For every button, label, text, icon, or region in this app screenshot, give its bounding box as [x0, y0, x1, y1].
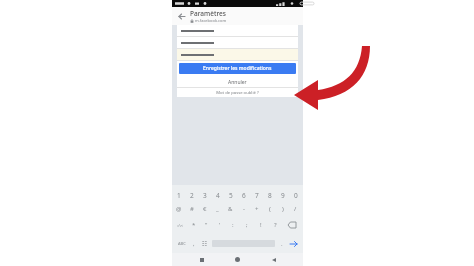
button[interactable]: 2 [185, 188, 198, 202]
button[interactable]: Backspace [282, 216, 301, 234]
button[interactable]: Back [176, 11, 187, 22]
staticText: 9 [281, 191, 285, 200]
staticText: 8 [268, 191, 272, 200]
staticText: Mot de passe oublié ? [216, 90, 259, 96]
staticText: € [203, 205, 207, 213]
button[interactable]: # [185, 202, 198, 216]
staticText: ABC [178, 241, 186, 246]
button[interactable]: 8 [263, 188, 276, 202]
button[interactable]: 4 [211, 188, 224, 202]
button[interactable]: @ [173, 202, 185, 216]
button[interactable]: ' [213, 216, 226, 234]
staticText: . [281, 240, 283, 248]
staticText: Paramètres [190, 9, 226, 18]
staticText: =\< [177, 223, 184, 228]
staticText: + [255, 205, 259, 213]
button[interactable] [177, 37, 298, 49]
button[interactable]: ? [268, 216, 282, 234]
staticText: " [205, 221, 208, 229]
button[interactable]: - [237, 202, 250, 216]
button[interactable]: Enregistrer les modifications [179, 63, 296, 74]
button[interactable]: / [289, 202, 302, 216]
staticText: 6 [242, 191, 246, 200]
button[interactable]: Annuler [177, 77, 298, 87]
staticText: @ [176, 205, 182, 213]
staticText: Enregistrer les modifications [203, 65, 272, 72]
button[interactable]: ) [276, 202, 289, 216]
staticText: # [190, 205, 194, 213]
staticText: , [193, 240, 195, 248]
staticText: * [192, 221, 196, 229]
button[interactable]: : [226, 216, 240, 234]
staticText: Annuler [228, 79, 247, 86]
button[interactable]: , [189, 234, 199, 253]
staticText: 7 [255, 191, 259, 200]
staticText: ' [219, 221, 221, 229]
button[interactable]: € [198, 202, 211, 216]
staticText: ) [282, 205, 284, 213]
staticText: 1 [177, 191, 181, 200]
staticText: ( [269, 205, 271, 213]
button[interactable]: ! [254, 216, 268, 234]
staticText: ? [274, 221, 277, 229]
staticText: 2 [190, 191, 194, 200]
button[interactable]: 9 [276, 188, 289, 202]
button[interactable] [177, 49, 298, 61]
button[interactable]: 6 [237, 188, 250, 202]
button[interactable]: ABC [175, 234, 189, 253]
staticText: ! [260, 221, 262, 229]
button[interactable]: Home [231, 253, 244, 266]
button[interactable]: Emoji [199, 234, 210, 253]
staticText: / [294, 205, 297, 213]
button[interactable]: " [200, 216, 213, 234]
button[interactable]: 5 [224, 188, 237, 202]
staticText: 3 [203, 191, 207, 200]
staticText: _ [216, 205, 219, 213]
staticText: : [232, 221, 234, 229]
button[interactable]: =\< [174, 216, 187, 234]
staticText: 4 [216, 191, 220, 200]
button[interactable]: _ [211, 202, 224, 216]
button[interactable]: 0 [289, 188, 302, 202]
staticText: ; [246, 221, 248, 229]
button[interactable]: 7 [250, 188, 263, 202]
button[interactable]: 1 [173, 188, 185, 202]
button[interactable]: Enter [287, 234, 301, 253]
staticText: ☷ [202, 240, 208, 247]
staticText: - [243, 205, 245, 213]
button[interactable]: ( [263, 202, 276, 216]
button[interactable]: Mot de passe oublié ? [177, 88, 298, 97]
button[interactable]: + [250, 202, 263, 216]
staticText: 0 [294, 191, 298, 200]
button[interactable]: Back [267, 253, 280, 266]
button[interactable]: ; [240, 216, 254, 234]
button[interactable] [177, 25, 298, 37]
button[interactable]: & [224, 202, 237, 216]
staticText: & [228, 205, 233, 213]
button[interactable]: * [187, 216, 200, 234]
staticText: 5 [229, 191, 233, 200]
button[interactable]: 3 [198, 188, 211, 202]
button[interactable]: Recents [195, 253, 208, 266]
staticText: m.facebook.com [195, 18, 227, 23]
